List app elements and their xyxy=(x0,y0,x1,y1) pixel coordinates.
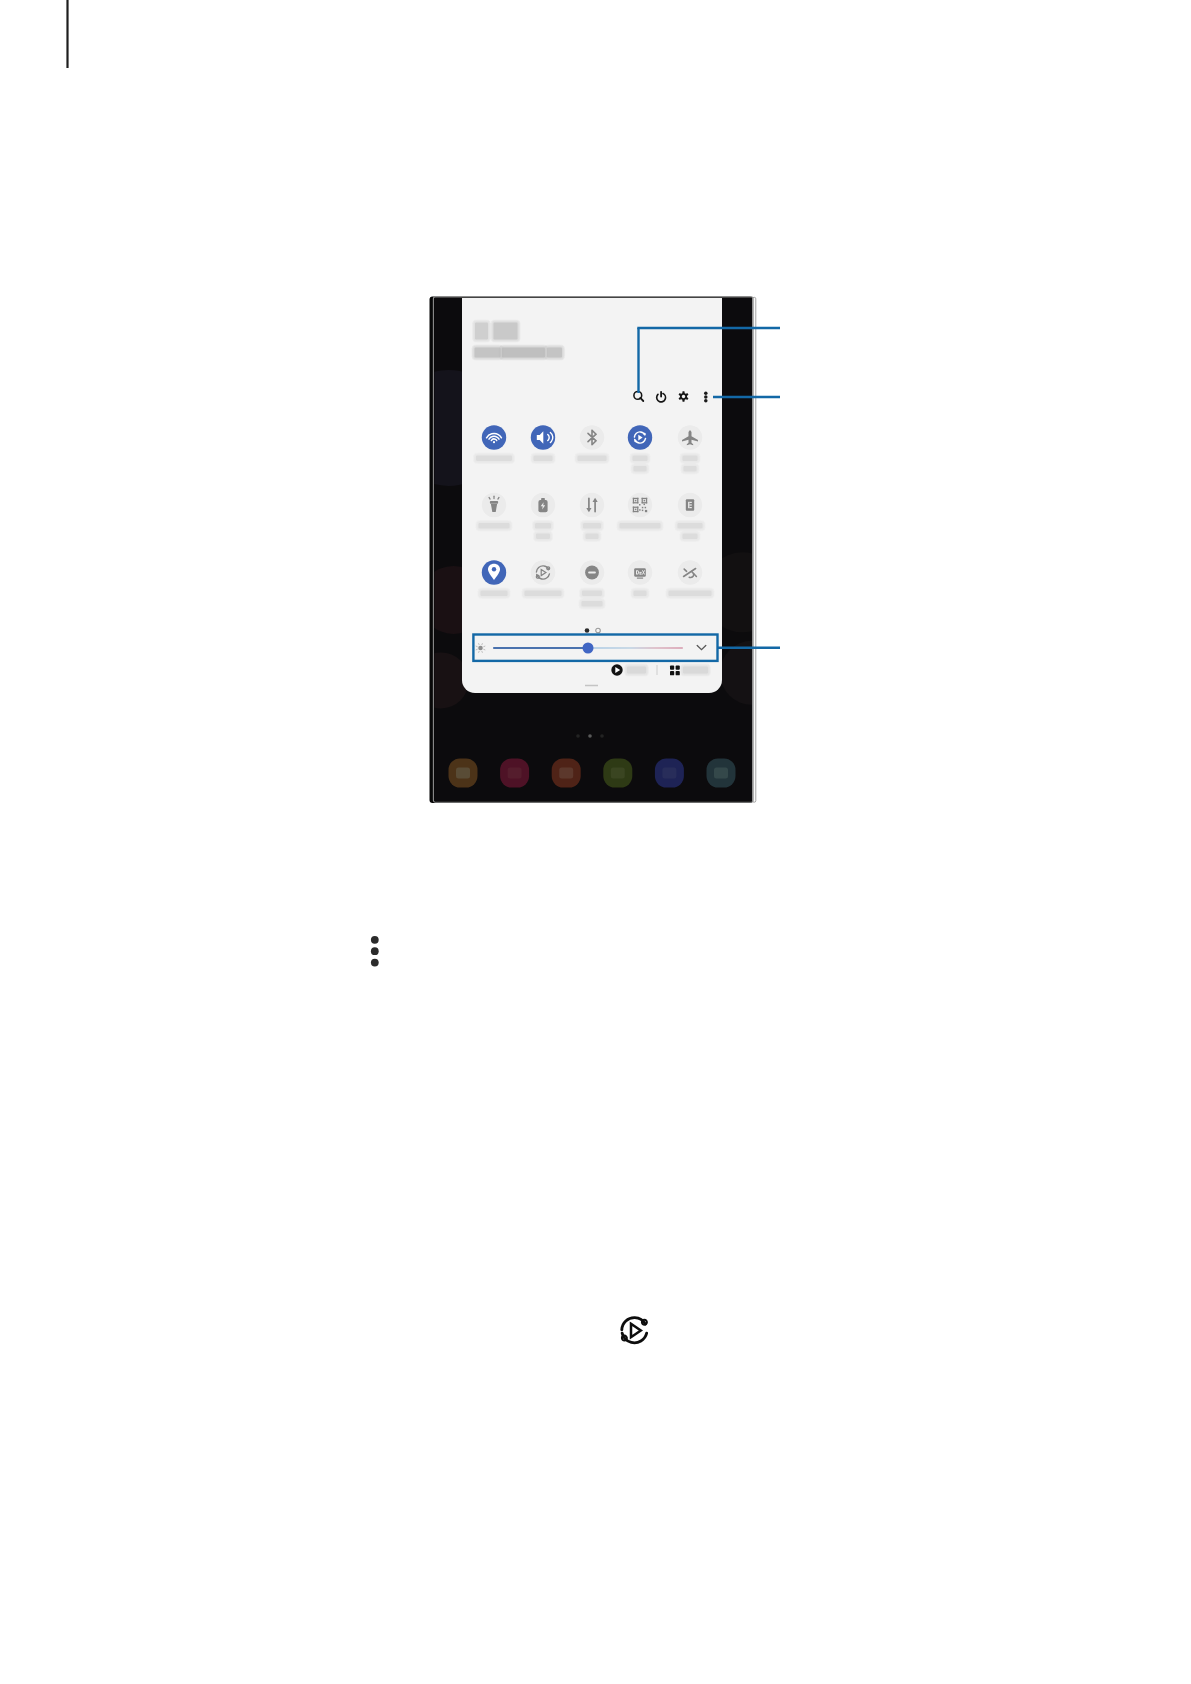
button[interactable]: Devices xyxy=(662,660,716,680)
button[interactable]: More options xyxy=(361,937,389,965)
button[interactable]: Sound xyxy=(530,425,556,451)
button[interactable]: Do not disturb xyxy=(579,560,605,586)
button[interactable]: Expand brightness settings xyxy=(691,637,711,657)
button[interactable]: Location xyxy=(481,560,507,586)
button[interactable]: App 5 xyxy=(654,758,684,788)
button[interactable]: More options xyxy=(696,386,718,408)
button[interactable]: Mobile data xyxy=(579,492,605,518)
button[interactable]: Wi-Fi xyxy=(481,425,507,451)
button[interactable]: Scan QR code xyxy=(627,492,653,518)
button[interactable]: App 2 xyxy=(500,758,530,788)
button[interactable]: Smart View xyxy=(618,1314,650,1346)
button[interactable]: Settings xyxy=(672,386,694,408)
button[interactable]: App 3 xyxy=(551,758,581,788)
button[interactable]: Bluetooth xyxy=(579,425,605,451)
button[interactable]: Flight mode xyxy=(677,425,703,451)
button[interactable]: Smart View xyxy=(627,425,653,451)
button[interactable]: Smart View xyxy=(530,560,556,586)
button[interactable]: Brightness xyxy=(473,635,717,661)
button[interactable]: Power off xyxy=(650,386,672,408)
button[interactable]: DeX xyxy=(627,560,653,586)
button[interactable]: Blue light filter xyxy=(677,492,703,518)
button[interactable]: App 4 xyxy=(603,758,633,788)
button[interactable]: App 1 xyxy=(448,758,478,788)
button[interactable]: Search xyxy=(628,386,650,408)
button[interactable]: Media xyxy=(609,660,653,680)
button[interactable]: Power saving xyxy=(530,492,556,518)
button[interactable]: App 6 xyxy=(706,758,736,788)
button[interactable]: Nearby Share xyxy=(677,560,703,586)
button[interactable]: Flashlight xyxy=(481,492,507,518)
